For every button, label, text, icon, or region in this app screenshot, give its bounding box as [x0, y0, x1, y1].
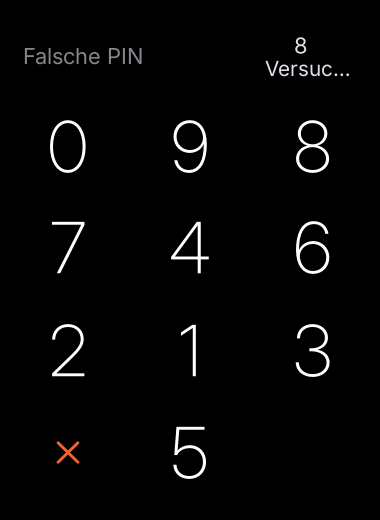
staticText: 0 [47, 104, 88, 189]
button[interactable]: 2 [7, 300, 129, 401]
button[interactable]: 3 [251, 300, 373, 401]
staticText: 1 [178, 308, 201, 393]
staticText: 5 [171, 410, 209, 495]
button[interactable]: 1 [129, 300, 251, 401]
button[interactable]: 5 [129, 402, 251, 503]
button[interactable]: 7 [7, 197, 129, 298]
staticText: 8 [293, 104, 331, 189]
staticText: Versuc… [265, 56, 351, 81]
button[interactable]: 4 [129, 197, 251, 298]
button[interactable]: 6 [251, 197, 373, 298]
staticText: Falsche PIN [23, 43, 143, 69]
staticText: 8 [294, 32, 308, 59]
button[interactable]: 9 [129, 96, 251, 197]
staticText: 2 [49, 308, 87, 393]
button[interactable]: 0 [7, 96, 129, 197]
staticText: 3 [293, 308, 332, 393]
staticText: 7 [50, 205, 86, 290]
button[interactable]: Delete [7, 402, 129, 503]
button[interactable]: 8 [251, 96, 373, 197]
staticText: 9 [171, 104, 209, 189]
staticText: 4 [169, 205, 211, 290]
staticText: 6 [293, 205, 331, 290]
